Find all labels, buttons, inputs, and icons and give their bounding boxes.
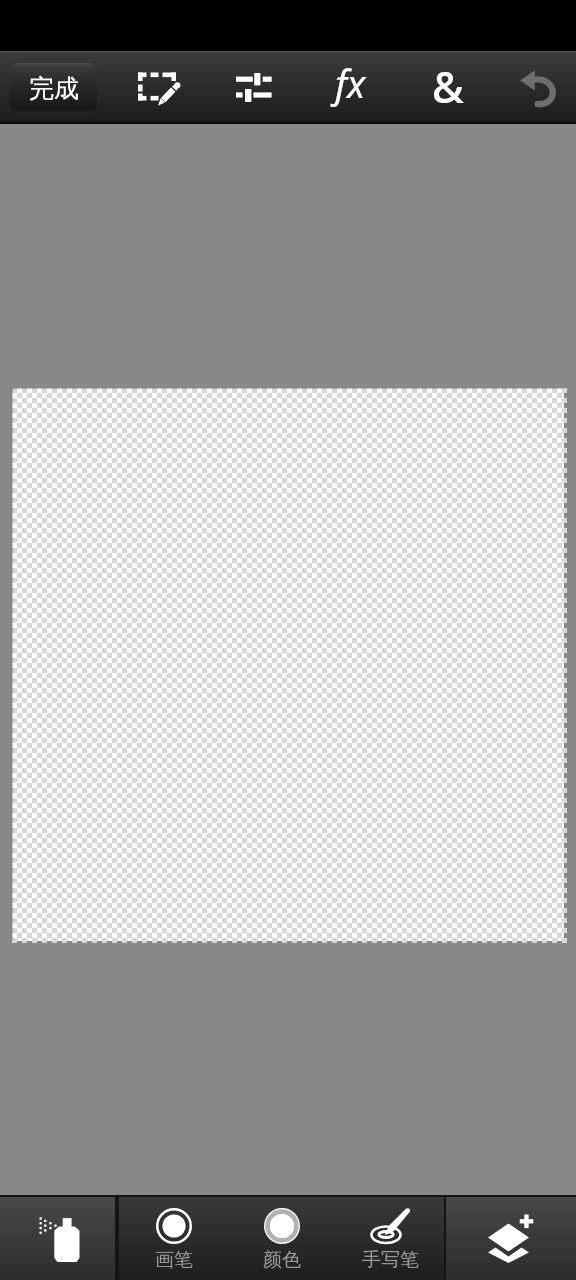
staticText: fx <box>335 57 366 109</box>
button[interactable]: 画笔 <box>119 1195 228 1280</box>
staticText: 颜色 <box>263 1248 301 1272</box>
button[interactable]: Undo <box>509 51 571 124</box>
button[interactable]: Effects <box>317 51 379 124</box>
button[interactable]: Add text <box>414 51 476 124</box>
button[interactable]: Select <box>128 51 190 124</box>
staticText: & <box>432 57 464 116</box>
button[interactable]: 完成 <box>10 63 97 113</box>
button[interactable]: Add layer <box>446 1195 576 1280</box>
button[interactable]: Spray tool <box>0 1195 115 1280</box>
staticText: 手写笔 <box>362 1248 419 1272</box>
staticText: 画笔 <box>155 1248 193 1272</box>
button[interactable]: Adjust <box>223 51 285 124</box>
staticText: 完成 <box>29 73 79 104</box>
button[interactable]: 手写笔 <box>336 1195 444 1280</box>
button[interactable]: 颜色 <box>228 1195 336 1280</box>
